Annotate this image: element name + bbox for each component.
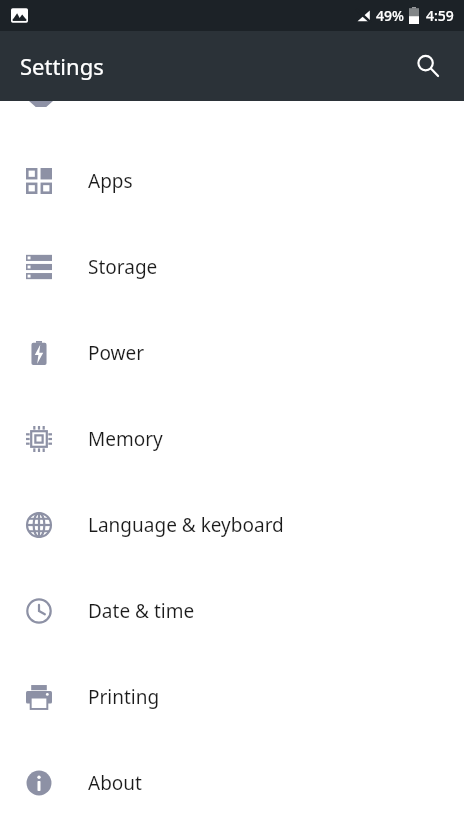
staticText: Apps: [88, 168, 133, 194]
staticText: Settings: [20, 51, 104, 81]
staticText: About: [88, 770, 142, 796]
button[interactable]: Storage: [0, 224, 464, 310]
staticText: Date & time: [88, 598, 195, 624]
staticText: Storage: [88, 254, 158, 280]
button[interactable]: About: [0, 740, 464, 825]
button[interactable]: Search: [404, 42, 452, 90]
button[interactable]: Date & time: [0, 568, 464, 654]
staticText: 4:59: [426, 6, 454, 25]
button[interactable]: Apps: [0, 138, 464, 224]
staticText: 49%: [376, 6, 404, 25]
staticText: Language & keyboard: [88, 512, 284, 538]
button[interactable]: Printing: [0, 654, 464, 740]
button[interactable]: Power: [0, 310, 464, 396]
button[interactable]: Language & keyboard: [0, 482, 464, 568]
staticText: Printing: [88, 684, 160, 710]
staticText: Power: [88, 340, 145, 366]
button[interactable]: Memory: [0, 396, 464, 482]
staticText: Memory: [88, 426, 163, 452]
